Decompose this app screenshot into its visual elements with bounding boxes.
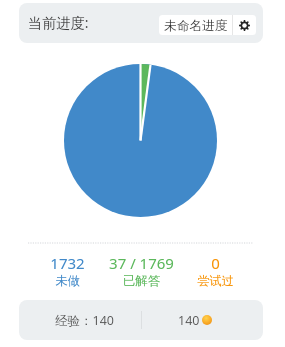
staticText: 37 / 1769 [109,253,174,273]
button[interactable]: 未命名进度 [159,17,232,33]
button[interactable]: 140 [152,300,237,339]
button[interactable]: 37 / 1769 [104,253,178,288]
staticText: 已解答 [123,273,160,288]
staticText: 0 [211,253,220,273]
staticText: 未做 [55,273,80,288]
staticText: 经验：140 [55,312,114,329]
button[interactable]: 经验：140 [31,300,137,339]
staticText: 当前进度: [28,13,89,32]
staticText: 140 [178,312,200,329]
staticText: 尝试过 [197,273,234,288]
button[interactable]: 0 [178,253,252,288]
staticText: 1732 [50,253,85,273]
staticText: 未命名进度 [164,18,228,34]
button[interactable]: 1732 [30,253,104,288]
button[interactable]: Settings [233,15,256,35]
